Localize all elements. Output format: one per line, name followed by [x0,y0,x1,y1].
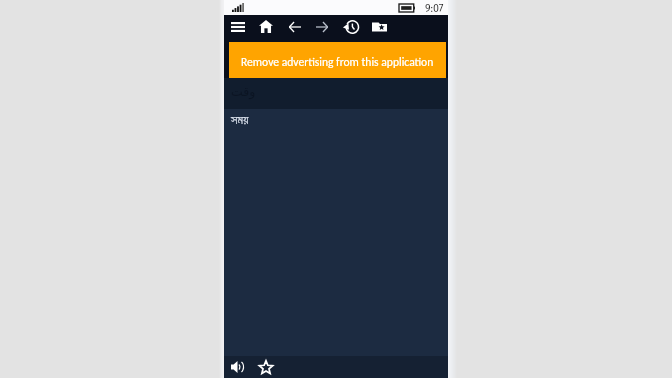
button[interactable]: Home [257,17,275,36]
button[interactable]: Sound [229,358,246,376]
staticText: Remove advertising from this application [241,55,434,69]
button[interactable]: Remove advertising from this application [229,42,446,78]
button[interactable]: সময় [224,109,448,140]
staticText: وقت [231,84,256,99]
button[interactable]: Forward [314,17,330,36]
button[interactable]: History [342,17,361,36]
button[interactable]: Favorite [257,358,275,376]
button[interactable]: Favorites [370,17,389,36]
staticText: 9:07 [425,1,444,15]
button[interactable]: Back [287,17,303,36]
button[interactable]: Menu [229,17,247,36]
staticText: সময় [231,114,249,127]
